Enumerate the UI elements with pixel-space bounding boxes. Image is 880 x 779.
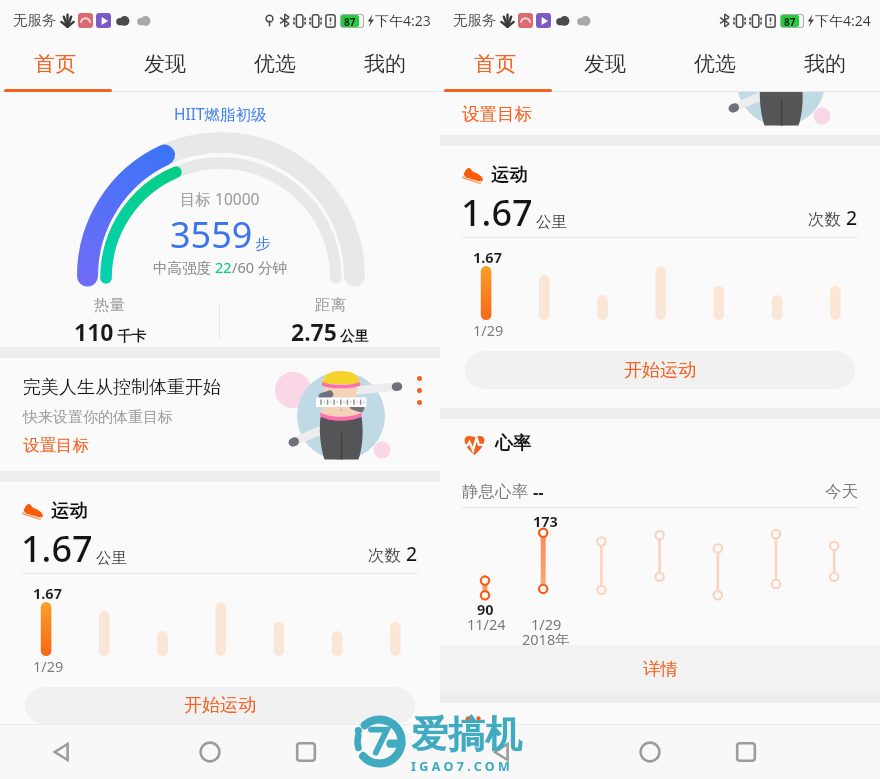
- button[interactable]: Back: [440, 724, 564, 779]
- button[interactable]: 首页: [440, 40, 550, 88]
- button[interactable]: 我的: [330, 40, 440, 88]
- staticText: 1.67: [21, 524, 93, 573]
- staticText: 下午4:23: [375, 11, 431, 30]
- staticText: 87: [344, 15, 356, 27]
- staticText: 无服务: [453, 11, 497, 29]
- button[interactable]: 发现: [110, 40, 220, 88]
- staticText: 步: [255, 234, 271, 254]
- button[interactable]: 设置目标: [440, 92, 880, 135]
- button[interactable]: Recent apps: [0, 724, 316, 779]
- staticText: 详情: [643, 658, 678, 680]
- button[interactable]: Back: [0, 724, 124, 779]
- staticText: 2018年: [522, 629, 570, 649]
- staticText: 90: [477, 599, 494, 619]
- staticText: 下午4:24: [815, 11, 871, 30]
- staticText: 优选: [254, 51, 296, 77]
- button[interactable]: 发现: [550, 40, 660, 88]
- staticText: 3559: [170, 210, 253, 259]
- staticText: 1/29: [33, 656, 64, 676]
- staticText: 热量: [94, 295, 125, 315]
- staticText: 2: [846, 204, 858, 231]
- staticText: 2: [406, 540, 418, 567]
- staticText: 2.75: [291, 316, 337, 347]
- staticText: 公里: [340, 327, 369, 345]
- button[interactable]: More options: [414, 373, 425, 408]
- button[interactable]: Home: [0, 724, 220, 779]
- staticText: 我的: [364, 51, 406, 77]
- staticText: 无服务: [13, 11, 57, 29]
- staticText: 首页: [34, 51, 76, 77]
- staticText: 静息心率: [462, 479, 533, 502]
- staticText: 设置目标: [23, 435, 89, 456]
- staticText: 爱搞机: [411, 711, 522, 758]
- staticText: 开始运动: [624, 359, 696, 382]
- button[interactable]: 我的: [770, 40, 880, 88]
- button[interactable]: 优选: [660, 40, 770, 88]
- staticText: 首页: [474, 51, 516, 77]
- staticText: 发现: [584, 51, 626, 77]
- button[interactable]: 完美人生从控制体重开始: [0, 358, 440, 471]
- staticText: IGAO7.COM: [411, 758, 514, 771]
- staticText: 次数: [368, 543, 406, 566]
- staticText: 173: [533, 511, 558, 531]
- staticText: 110: [74, 316, 114, 347]
- staticText: 千卡: [117, 327, 146, 345]
- staticText: 1.67: [473, 247, 502, 267]
- staticText: 公里: [536, 212, 567, 232]
- staticText: 87: [784, 15, 796, 27]
- staticText: 1/29: [473, 320, 504, 340]
- staticText: 1.67: [33, 583, 62, 603]
- staticText: /60 分钟: [232, 257, 287, 277]
- staticText: 中高强度: [153, 257, 215, 277]
- staticText: 1.67: [461, 188, 533, 237]
- staticText: 快来设置你的体重目标: [23, 408, 173, 427]
- staticText: 次数: [808, 207, 846, 230]
- button[interactable]: 开始运动: [465, 351, 855, 389]
- staticText: 设置目标: [462, 103, 532, 125]
- staticText: 开始运动: [184, 694, 256, 717]
- staticText: 目标 10000: [180, 188, 260, 209]
- staticText: HIIT燃脂初级: [174, 103, 267, 124]
- staticText: 心率: [495, 432, 531, 455]
- staticText: 22: [215, 257, 232, 277]
- button[interactable]: Home: [440, 724, 660, 779]
- staticText: 距离: [315, 295, 346, 315]
- staticText: 1/29: [531, 614, 562, 634]
- staticText: 优选: [694, 51, 736, 77]
- button[interactable]: Recent apps: [440, 724, 756, 779]
- staticText: 公里: [96, 548, 127, 568]
- staticText: 运动: [491, 164, 527, 187]
- staticText: --: [533, 480, 544, 502]
- staticText: 发现: [144, 51, 186, 77]
- button[interactable]: 开始运动: [25, 687, 415, 724]
- staticText: 今天: [825, 481, 858, 502]
- staticText: 完美人生从控制体重开始: [23, 376, 221, 399]
- button[interactable]: 首页: [0, 40, 110, 88]
- button[interactable]: 优选: [220, 40, 330, 88]
- button[interactable]: 详情: [440, 645, 880, 692]
- staticText: 11/24: [467, 614, 506, 634]
- staticText: 运动: [51, 500, 87, 523]
- staticText: 我的: [804, 51, 846, 77]
